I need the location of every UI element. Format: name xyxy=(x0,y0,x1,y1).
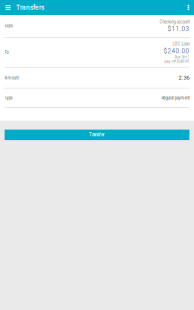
staticText: Checking account xyxy=(159,19,189,25)
staticText: Transfer xyxy=(89,132,105,137)
button[interactable]: Amount xyxy=(0,68,194,88)
button[interactable]: Menu xyxy=(0,0,16,15)
staticText: 2.36 xyxy=(178,74,189,81)
button[interactable]: To xyxy=(0,38,194,67)
staticText: $11.03 xyxy=(167,24,189,33)
staticText: Transfers xyxy=(16,4,44,11)
button[interactable]: Transfer xyxy=(5,130,189,140)
staticText: Due Oct 1 xyxy=(174,54,189,59)
button[interactable]: Type xyxy=(0,89,194,107)
staticText: LOC Loan xyxy=(172,41,189,47)
button[interactable]: More options xyxy=(183,0,194,15)
staticText: $240.00 xyxy=(163,46,189,55)
staticText: Regular payment xyxy=(161,95,189,101)
staticText: Type xyxy=(5,95,13,101)
staticText: Amount xyxy=(5,75,19,81)
staticText: pay off $240.00 xyxy=(164,59,189,63)
button[interactable]: From xyxy=(0,15,194,37)
staticText: From xyxy=(5,23,14,29)
staticText: To xyxy=(5,50,9,55)
